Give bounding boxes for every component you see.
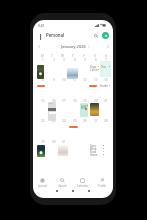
button[interactable] <box>48 119 59 140</box>
staticText: Profile <box>98 184 106 188</box>
button[interactable] <box>79 78 90 99</box>
staticText: 9:41 <box>38 24 45 28</box>
staticText: 24 <box>62 119 66 123</box>
staticText: 13 <box>94 78 98 82</box>
staticText: M <box>41 54 44 58</box>
button[interactable] <box>90 78 101 99</box>
button[interactable]: Menu <box>37 32 43 41</box>
staticText: January 2026 <box>61 44 86 49</box>
staticText: 23 <box>52 119 56 123</box>
button[interactable]: Search <box>52 175 72 190</box>
button[interactable] <box>100 119 111 140</box>
staticText: 11 <box>73 78 77 82</box>
staticText: T <box>72 54 74 58</box>
staticText: 19 <box>83 99 87 103</box>
button[interactable] <box>37 119 48 140</box>
staticText: 29 <box>41 140 45 144</box>
button[interactable] <box>90 58 101 79</box>
button[interactable] <box>79 99 90 120</box>
staticText: 18 <box>73 99 77 103</box>
button[interactable] <box>48 78 59 99</box>
staticText: 16 <box>52 99 56 103</box>
staticText: Search <box>58 184 67 188</box>
button[interactable] <box>48 58 59 79</box>
button[interactable]: Calendar <box>72 175 92 190</box>
button[interactable] <box>69 99 80 120</box>
button[interactable] <box>69 78 80 99</box>
staticText: 30 <box>52 140 56 144</box>
staticText: 27 <box>94 119 98 123</box>
staticText: 10 <box>62 78 66 82</box>
button[interactable] <box>48 140 59 161</box>
staticText: Calendar <box>77 184 88 188</box>
button[interactable] <box>37 99 48 120</box>
button[interactable] <box>58 140 69 161</box>
button[interactable] <box>69 58 80 79</box>
staticText: 15 <box>41 99 45 103</box>
staticText: Lunch with <box>81 104 88 110</box>
staticText: Personal <box>46 32 65 38</box>
button[interactable] <box>79 58 90 79</box>
staticText: 20 <box>94 99 98 103</box>
button[interactable] <box>58 99 69 120</box>
staticText: 25 <box>73 119 77 123</box>
button[interactable] <box>37 78 48 99</box>
staticText: Work <box>90 147 97 150</box>
button[interactable]: Profile <box>102 32 109 39</box>
button[interactable]: Search <box>91 31 100 40</box>
staticText: W <box>61 54 64 58</box>
button[interactable]: Next month <box>104 43 111 50</box>
staticText: Call m <box>90 68 98 71</box>
button[interactable] <box>58 78 69 99</box>
staticText: 31 <box>62 140 66 144</box>
staticText: 26 <box>83 119 87 123</box>
button[interactable] <box>90 119 101 140</box>
button[interactable] <box>58 58 69 79</box>
staticText: 6 <box>95 58 97 62</box>
staticText: 4 <box>74 58 76 62</box>
button[interactable]: Profile <box>92 175 112 190</box>
button[interactable] <box>90 99 101 120</box>
staticText: Yoga <box>90 65 96 68</box>
button[interactable]: Previous month <box>35 43 42 50</box>
staticText: 14 <box>104 78 108 82</box>
button[interactable] <box>37 140 48 161</box>
button[interactable] <box>69 119 80 140</box>
staticText: Food <box>90 150 97 153</box>
staticText: 2 <box>53 58 55 62</box>
staticText: S <box>94 54 96 58</box>
staticText: Studio <box>100 84 108 87</box>
button[interactable] <box>100 58 111 79</box>
button[interactable] <box>79 119 90 140</box>
staticText: T <box>51 54 53 58</box>
button[interactable]: Journal <box>33 175 52 190</box>
staticText: Home <box>90 153 98 156</box>
button[interactable] <box>37 58 48 79</box>
staticText: 21 <box>104 99 108 103</box>
staticText: 28 <box>104 119 108 123</box>
staticText: 7 <box>105 58 107 62</box>
staticText: 17 <box>62 99 66 103</box>
staticText: Gym <box>90 144 96 147</box>
staticText: 12 <box>83 78 87 82</box>
staticText: 8 <box>42 78 44 82</box>
button[interactable] <box>100 99 111 120</box>
staticText: F <box>83 54 85 58</box>
staticText: 9 <box>53 78 55 82</box>
button[interactable] <box>100 78 111 99</box>
staticText: 1 <box>42 58 44 62</box>
staticText: S <box>105 54 107 58</box>
staticText: 5 <box>84 58 86 62</box>
button[interactable] <box>48 99 59 120</box>
staticText: Trip <box>101 65 106 68</box>
staticText: Journal <box>38 184 47 188</box>
staticText: 22 <box>41 119 45 123</box>
button[interactable] <box>58 119 69 140</box>
staticText: 3 <box>63 58 65 62</box>
